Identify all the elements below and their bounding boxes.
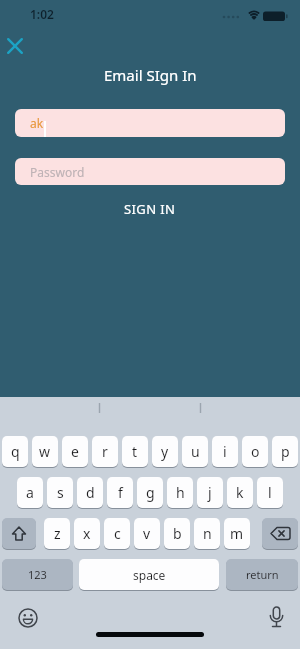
button[interactable]: x <box>74 518 100 549</box>
button[interactable]: r <box>92 436 118 467</box>
staticText: Email SIgn In <box>104 65 197 85</box>
staticText: p <box>281 442 290 461</box>
button[interactable]: space <box>79 559 219 590</box>
staticText: Password <box>30 164 85 180</box>
staticText: r <box>102 442 108 461</box>
staticText: e <box>71 442 79 461</box>
button[interactable]: j <box>197 477 223 508</box>
staticText: 123 <box>28 567 47 582</box>
button[interactable] <box>4 35 26 57</box>
button[interactable]: p <box>272 436 298 467</box>
button[interactable]: h <box>167 477 193 508</box>
button[interactable]: k <box>227 477 253 508</box>
button[interactable]: z <box>44 518 70 549</box>
button[interactable]: Password <box>15 158 285 185</box>
staticText: ak <box>30 115 44 131</box>
button[interactable]: i <box>212 436 238 467</box>
button[interactable] <box>262 518 298 549</box>
staticText: u <box>191 442 200 461</box>
staticText: j <box>208 483 212 502</box>
staticText: o <box>251 442 260 461</box>
staticText: d <box>86 483 95 502</box>
staticText: y <box>161 442 169 461</box>
button[interactable]: b <box>164 518 190 549</box>
button[interactable]: l <box>257 477 283 508</box>
button[interactable]: ak <box>15 109 285 137</box>
button[interactable]: SIGN IN <box>124 200 176 218</box>
staticText: f <box>118 483 123 502</box>
staticText: v <box>143 524 151 543</box>
staticText: i <box>223 442 227 461</box>
staticText: b <box>173 524 182 543</box>
staticText: t <box>132 442 138 461</box>
button[interactable]: q <box>2 436 28 467</box>
staticText: q <box>11 442 20 461</box>
staticText: m <box>230 524 244 543</box>
button[interactable]: a <box>17 477 43 508</box>
staticText: z <box>54 524 61 543</box>
staticText: h <box>176 483 185 502</box>
staticText: return <box>246 567 279 582</box>
staticText: g <box>146 483 155 502</box>
staticText: c <box>114 524 121 543</box>
button[interactable]: y <box>152 436 178 467</box>
button[interactable]: t <box>122 436 148 467</box>
staticText: w <box>39 442 51 461</box>
staticText: a <box>26 483 34 502</box>
button[interactable]: u <box>182 436 208 467</box>
staticText: k <box>236 483 244 502</box>
button[interactable]: w <box>32 436 58 467</box>
button[interactable]: f <box>107 477 133 508</box>
button[interactable]: e <box>62 436 88 467</box>
staticText: s <box>57 483 64 502</box>
staticText: l <box>268 483 272 502</box>
button[interactable] <box>266 605 287 631</box>
button[interactable]: n <box>194 518 220 549</box>
button[interactable]: v <box>134 518 160 549</box>
button[interactable]: s <box>47 477 73 508</box>
button[interactable]: return <box>226 559 298 590</box>
button[interactable] <box>2 518 36 549</box>
button[interactable]: o <box>242 436 268 467</box>
staticText: x <box>83 524 91 543</box>
staticText: SIGN IN <box>124 200 176 218</box>
staticText: 1:02 <box>30 6 54 22</box>
button[interactable]: d <box>77 477 103 508</box>
staticText: space <box>133 567 166 583</box>
button[interactable]: c <box>104 518 130 549</box>
button[interactable]: 123 <box>2 559 73 590</box>
button[interactable]: g <box>137 477 163 508</box>
button[interactable] <box>17 607 39 629</box>
button[interactable]: m <box>224 518 250 549</box>
staticText: n <box>203 524 212 543</box>
